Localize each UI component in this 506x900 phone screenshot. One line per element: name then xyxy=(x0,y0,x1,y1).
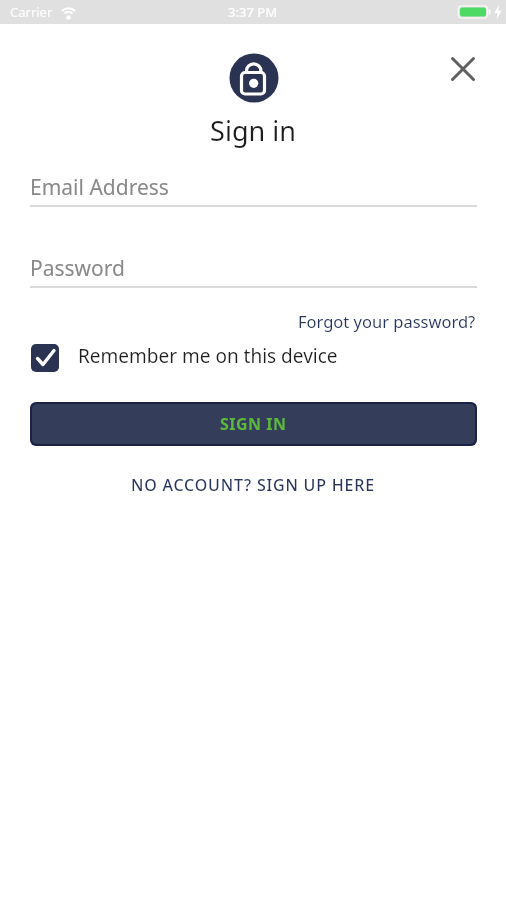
staticText: Forgot your password? xyxy=(298,310,476,332)
staticText: Remember me on this device xyxy=(78,343,338,369)
button[interactable] xyxy=(445,51,481,87)
button[interactable]: NO ACCOUNT? SIGN UP HERE xyxy=(131,474,375,496)
staticText: Carrier xyxy=(10,3,53,21)
staticText: Sign in xyxy=(0,112,506,149)
staticText: 3:37 PM xyxy=(228,3,278,21)
staticText: Email Address xyxy=(30,173,169,202)
button[interactable]: SIGN IN xyxy=(32,404,475,444)
staticText: Password xyxy=(30,254,125,283)
button[interactable]: Forgot your password? xyxy=(298,310,476,332)
button[interactable]: Remember me on this device xyxy=(30,343,338,372)
staticText: NO ACCOUNT? SIGN UP HERE xyxy=(131,474,375,496)
staticText: SIGN IN xyxy=(220,413,287,435)
